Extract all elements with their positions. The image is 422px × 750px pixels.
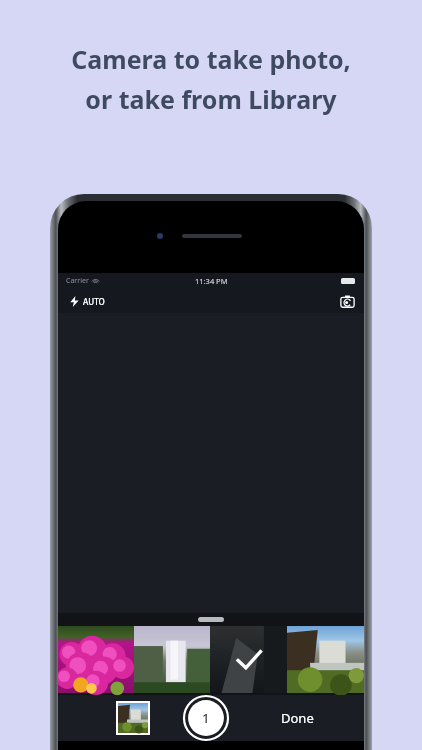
staticText: Carrier	[66, 276, 89, 286]
staticText: AUTO	[83, 296, 105, 307]
button[interactable]	[58, 626, 134, 693]
staticText: 1	[202, 709, 210, 727]
button[interactable]	[118, 703, 148, 733]
button[interactable]: Last photo	[116, 701, 150, 735]
staticText: 11:34 PM	[195, 276, 228, 286]
button[interactable]: Shutter	[183, 695, 229, 741]
button[interactable]	[134, 626, 210, 693]
button[interactable]	[287, 626, 364, 693]
button[interactable]: Switch camera	[338, 292, 356, 310]
button[interactable]: Done	[275, 705, 320, 731]
staticText: or take from Library	[85, 82, 337, 116]
staticText: Camera to take photo,	[71, 42, 351, 76]
button[interactable]: AUTO	[66, 293, 108, 310]
staticText: Done	[281, 709, 314, 727]
